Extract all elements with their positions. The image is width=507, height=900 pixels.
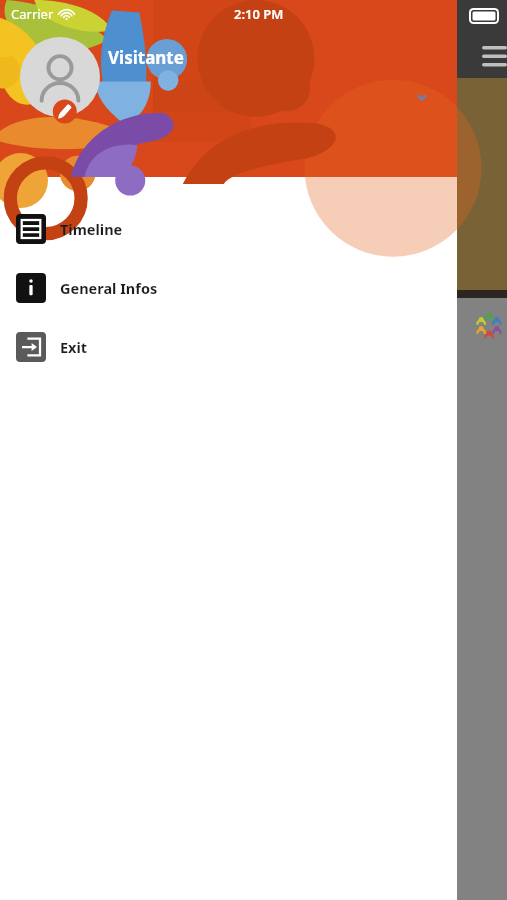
button[interactable]: Exit — [0, 317, 457, 376]
button[interactable]: General Infos — [0, 258, 457, 317]
staticText: Exit — [60, 337, 88, 357]
button[interactable]: Edit profile photo — [20, 37, 100, 117]
staticText: 2:10 PM — [234, 5, 284, 23]
staticText: Timeline — [60, 219, 123, 239]
button[interactable]: Timeline — [0, 199, 457, 258]
staticText: General Infos — [60, 278, 158, 298]
button[interactable]: Expand — [410, 86, 434, 110]
staticText: Visitante — [108, 46, 184, 69]
staticText: Carrier — [11, 5, 54, 23]
